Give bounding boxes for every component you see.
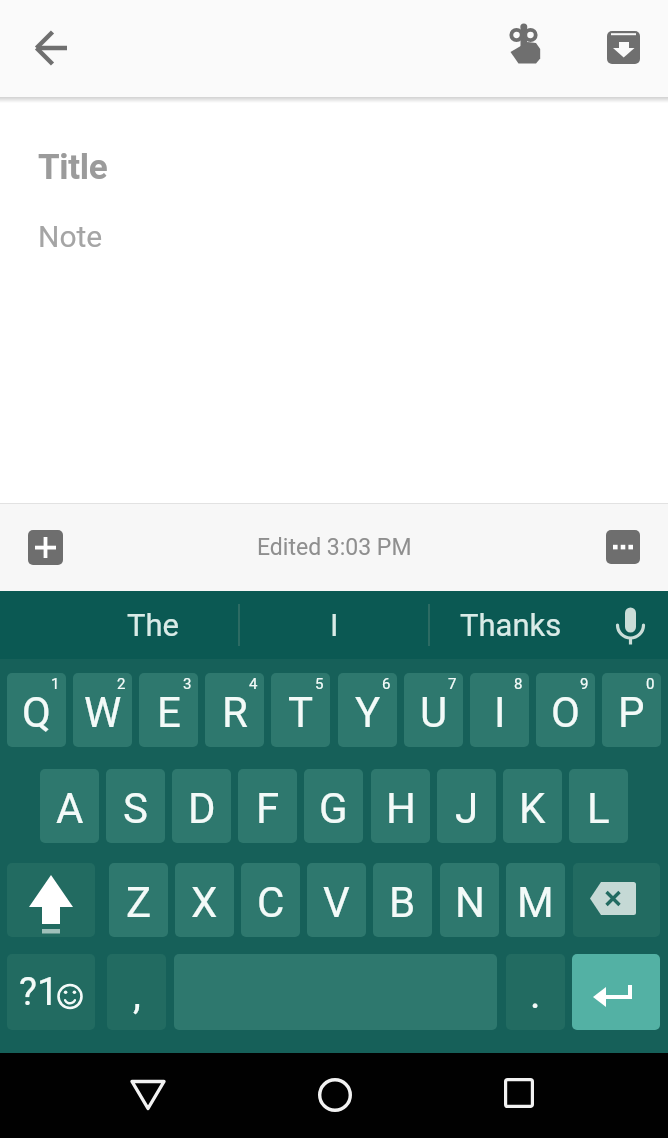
- button[interactable]: G: [304, 769, 363, 843]
- staticText: Q: [22, 688, 51, 737]
- button[interactable]: H: [371, 769, 430, 843]
- staticText: Thanks: [460, 607, 562, 643]
- button[interactable]: [307, 1067, 363, 1123]
- button[interactable]: J: [437, 769, 496, 843]
- staticText: G: [319, 784, 348, 833]
- button[interactable]: ?1: [7, 954, 95, 1030]
- button[interactable]: M: [506, 863, 565, 937]
- staticText: U: [420, 688, 448, 737]
- staticText: H: [386, 784, 416, 833]
- button[interactable]: [499, 17, 555, 73]
- button[interactable]: [603, 597, 659, 653]
- staticText: B: [389, 878, 416, 927]
- staticText: 2: [117, 675, 126, 693]
- button[interactable]: .: [506, 954, 565, 1030]
- button[interactable]: A: [40, 769, 99, 843]
- button[interactable]: B: [373, 863, 432, 937]
- staticText: T: [288, 688, 314, 737]
- staticText: 1: [51, 675, 60, 693]
- staticText: 7: [448, 675, 457, 693]
- staticText: A: [56, 784, 84, 833]
- button[interactable]: P: [602, 673, 661, 747]
- staticText: I: [494, 688, 506, 737]
- button[interactable]: ,: [107, 954, 166, 1030]
- staticText: W: [84, 688, 122, 737]
- staticText: P: [618, 688, 645, 737]
- staticText: I: [330, 607, 339, 643]
- staticText: R: [222, 688, 248, 737]
- staticText: C: [257, 878, 285, 927]
- staticText: X: [191, 878, 218, 927]
- button[interactable]: [7, 863, 95, 937]
- staticText: The: [127, 607, 180, 643]
- staticText: 6: [382, 675, 391, 693]
- button[interactable]: D: [172, 769, 231, 843]
- staticText: J: [455, 784, 479, 833]
- button[interactable]: F: [238, 769, 297, 843]
- button[interactable]: Y: [338, 673, 397, 747]
- staticText: L: [587, 784, 610, 833]
- button[interactable]: Q: [7, 673, 66, 747]
- staticText: F: [256, 784, 280, 833]
- button[interactable]: [491, 1067, 547, 1123]
- staticText: M: [517, 878, 554, 927]
- staticText: N: [455, 878, 485, 927]
- button[interactable]: [120, 1067, 176, 1123]
- button[interactable]: K: [503, 769, 562, 843]
- button[interactable]: Z: [109, 863, 168, 937]
- staticText: D: [188, 784, 216, 833]
- staticText: 5: [315, 675, 324, 693]
- button[interactable]: S: [106, 769, 165, 843]
- button[interactable]: I: [240, 591, 428, 659]
- button[interactable]: W: [73, 673, 132, 747]
- button[interactable]: The: [0, 591, 238, 659]
- button[interactable]: [24, 19, 80, 75]
- button[interactable]: [28, 530, 63, 565]
- button[interactable]: I: [470, 673, 529, 747]
- button[interactable]: [573, 863, 660, 937]
- button[interactable]: T: [271, 673, 330, 747]
- staticText: S: [123, 784, 148, 833]
- staticText: 9: [580, 675, 589, 693]
- staticText: O: [551, 688, 580, 737]
- staticText: E: [157, 688, 181, 737]
- button[interactable]: N: [440, 863, 499, 937]
- button[interactable]: O: [536, 673, 595, 747]
- staticText: Z: [126, 878, 152, 927]
- staticText: 4: [249, 675, 258, 693]
- button[interactable]: V: [307, 863, 366, 937]
- button[interactable]: C: [241, 863, 300, 937]
- button[interactable]: [606, 530, 640, 564]
- button[interactable]: [595, 19, 651, 75]
- button[interactable]: [572, 954, 660, 1030]
- staticText: Edited 3:03 PM: [257, 534, 412, 561]
- button[interactable]: R: [205, 673, 264, 747]
- button[interactable]: Thanks: [430, 591, 592, 659]
- staticText: .: [530, 971, 541, 1018]
- staticText: 8: [514, 675, 523, 693]
- staticText: ?1: [19, 970, 59, 1015]
- button[interactable]: U: [404, 673, 463, 747]
- staticText: 3: [183, 675, 192, 693]
- button[interactable]: L: [569, 769, 628, 843]
- staticText: ,: [133, 971, 141, 1018]
- staticText: Title: [38, 147, 108, 188]
- button[interactable]: X: [175, 863, 234, 937]
- staticText: Note: [38, 219, 103, 254]
- staticText: V: [323, 878, 350, 927]
- staticText: 0: [646, 675, 655, 693]
- staticText: Y: [355, 688, 381, 737]
- staticText: K: [519, 784, 546, 833]
- button[interactable]: E: [139, 673, 198, 747]
